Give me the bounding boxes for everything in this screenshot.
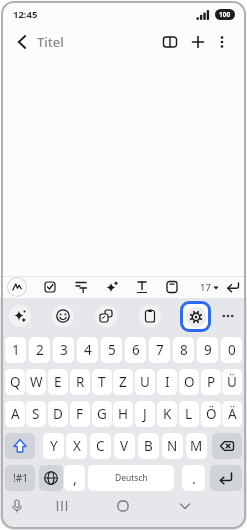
- button[interactable]: ,: [64, 465, 85, 491]
- button[interactable]: Ü: [222, 369, 242, 395]
- staticText: L: [185, 405, 193, 423]
- button[interactable]: 7: [149, 337, 170, 363]
- staticText: 4: [84, 341, 92, 359]
- button[interactable]: [186, 30, 210, 54]
- staticText: J: [143, 405, 147, 423]
- button[interactable]: [111, 494, 135, 518]
- staticText: 3: [60, 341, 68, 359]
- button[interactable]: [158, 30, 182, 54]
- button[interactable]: V: [114, 433, 135, 459]
- button[interactable]: [50, 494, 74, 518]
- button[interactable]: L: [179, 401, 199, 427]
- staticText: Y: [50, 437, 58, 455]
- button[interactable]: [6, 495, 28, 517]
- button[interactable]: [222, 276, 244, 298]
- button[interactable]: [94, 304, 118, 328]
- button[interactable]: [138, 304, 162, 328]
- button[interactable]: .: [182, 465, 205, 491]
- button[interactable]: F: [70, 401, 90, 427]
- staticText: 100: [219, 10, 231, 19]
- staticText: H: [118, 405, 129, 423]
- button[interactable]: M: [186, 433, 207, 459]
- button[interactable]: I: [157, 369, 177, 395]
- button[interactable]: H: [113, 401, 133, 427]
- button[interactable]: Y: [43, 433, 64, 459]
- button[interactable]: N: [162, 433, 183, 459]
- button[interactable]: [39, 276, 61, 298]
- button[interactable]: 4: [77, 337, 98, 363]
- staticText: 17: [200, 281, 211, 294]
- staticText: R: [76, 373, 85, 391]
- button[interactable]: Ä: [222, 401, 242, 427]
- staticText: Deutsch: [115, 472, 148, 484]
- staticText: Ö: [206, 405, 217, 423]
- button[interactable]: O: [179, 369, 199, 395]
- button[interactable]: 6: [125, 337, 146, 363]
- button[interactable]: T: [92, 369, 112, 395]
- staticText: P: [207, 373, 216, 391]
- button[interactable]: 8: [173, 337, 194, 363]
- button[interactable]: [217, 305, 239, 327]
- staticText: 12:45: [13, 8, 38, 21]
- staticText: B: [144, 437, 153, 455]
- staticText: 7: [156, 341, 164, 359]
- button[interactable]: 9: [197, 337, 218, 363]
- staticText: 2: [36, 341, 44, 359]
- button[interactable]: C: [90, 433, 111, 459]
- button[interactable]: X: [66, 433, 87, 459]
- staticText: 5: [108, 341, 116, 359]
- button[interactable]: S: [26, 401, 46, 427]
- button[interactable]: [5, 275, 29, 299]
- button[interactable]: [101, 276, 123, 298]
- button[interactable]: 0: [221, 337, 242, 363]
- button[interactable]: P: [201, 369, 221, 395]
- button[interactable]: K: [157, 401, 177, 427]
- staticText: V: [120, 437, 129, 455]
- button[interactable]: A: [5, 401, 25, 427]
- staticText: F: [76, 405, 84, 423]
- button[interactable]: Q: [5, 369, 25, 395]
- button[interactable]: [70, 276, 92, 298]
- button[interactable]: [161, 276, 183, 298]
- button[interactable]: !#1: [5, 465, 35, 491]
- button[interactable]: [212, 433, 242, 459]
- button[interactable]: B: [138, 433, 159, 459]
- button[interactable]: [39, 465, 63, 491]
- button[interactable]: [180, 301, 211, 332]
- button[interactable]: D: [48, 401, 68, 427]
- button[interactable]: W: [26, 369, 46, 395]
- staticText: S: [32, 405, 40, 423]
- staticText: Q: [10, 373, 21, 391]
- button[interactable]: E: [48, 369, 68, 395]
- button[interactable]: [10, 30, 34, 54]
- button[interactable]: [5, 433, 35, 459]
- staticText: K: [163, 405, 172, 423]
- staticText: 6: [132, 341, 140, 359]
- button[interactable]: [131, 276, 153, 298]
- staticText: X: [73, 437, 81, 455]
- staticText: 8: [180, 341, 188, 359]
- button[interactable]: 2: [29, 337, 50, 363]
- button[interactable]: 1: [5, 337, 26, 363]
- button[interactable]: Z: [113, 369, 133, 395]
- button[interactable]: Titel: [37, 32, 77, 52]
- button[interactable]: [210, 30, 234, 54]
- button[interactable]: [51, 304, 75, 328]
- button[interactable]: [173, 494, 197, 518]
- button[interactable]: G: [92, 401, 112, 427]
- staticText: A: [11, 405, 20, 423]
- button[interactable]: [8, 304, 32, 328]
- staticText: W: [30, 373, 43, 391]
- button[interactable]: J: [135, 401, 155, 427]
- staticText: G: [97, 405, 107, 423]
- button[interactable]: U: [135, 369, 155, 395]
- button[interactable]: Ö: [201, 401, 221, 427]
- button[interactable]: Deutsch: [88, 465, 174, 491]
- button[interactable]: 5: [101, 337, 122, 363]
- staticText: E: [54, 373, 62, 391]
- button[interactable]: [210, 465, 242, 491]
- button[interactable]: 3: [53, 337, 74, 363]
- staticText: Z: [119, 373, 127, 391]
- button[interactable]: 17: [190, 277, 220, 297]
- button[interactable]: R: [70, 369, 90, 395]
